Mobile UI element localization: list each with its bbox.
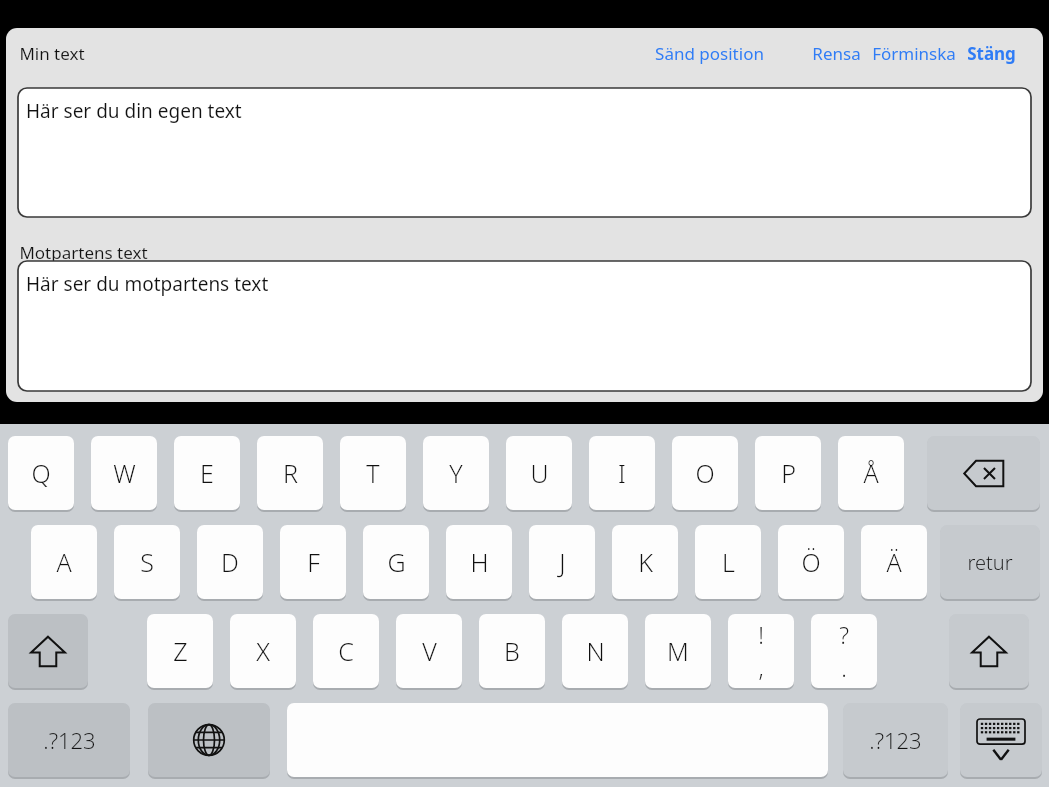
staticText: .	[841, 652, 847, 683]
button[interactable]: Backspace	[927, 436, 1040, 510]
staticText: Rensa	[812, 42, 861, 65]
button[interactable]: U	[506, 436, 572, 510]
button[interactable]: Stäng	[967, 42, 1016, 65]
staticText: G	[387, 545, 406, 579]
staticText: Ö	[801, 545, 821, 579]
button[interactable]: Shift	[949, 614, 1029, 688]
staticText: L	[722, 545, 735, 579]
staticText: A	[56, 545, 72, 579]
button[interactable]: T	[340, 436, 406, 510]
button[interactable]: R	[257, 436, 323, 510]
button[interactable]: W	[91, 436, 157, 510]
button[interactable]: S	[114, 525, 180, 599]
button[interactable]: P	[755, 436, 821, 510]
button[interactable]: D	[197, 525, 263, 599]
staticText: V	[422, 634, 437, 668]
button[interactable]: Shift	[8, 614, 88, 688]
button[interactable]: F	[280, 525, 346, 599]
staticText: Q	[31, 456, 51, 490]
button[interactable]: Här ser du motpartens text	[18, 261, 1031, 391]
staticText: Förminska	[872, 42, 956, 65]
button[interactable]: I	[589, 436, 655, 510]
button[interactable]: .?123	[843, 703, 948, 777]
button[interactable]: Y	[423, 436, 489, 510]
staticText: W	[113, 456, 136, 490]
staticText: B	[504, 634, 520, 668]
staticText: !	[758, 619, 764, 650]
staticText: Här ser du din egen text	[26, 98, 242, 124]
button[interactable]: Ä	[861, 525, 927, 599]
staticText: S	[140, 545, 154, 579]
button[interactable]: C	[313, 614, 379, 688]
staticText: M	[667, 634, 689, 668]
staticText: N	[586, 634, 605, 668]
button[interactable]: B	[479, 614, 545, 688]
staticText: U	[530, 456, 549, 490]
staticText: · 02:00 08:48	[258, 24, 326, 39]
button[interactable]: Z	[147, 614, 213, 688]
staticText: D	[221, 545, 239, 579]
button[interactable]: N	[562, 614, 628, 688]
staticText: P	[781, 456, 796, 490]
button[interactable]: Ö	[778, 525, 844, 599]
staticText: H	[470, 545, 489, 579]
staticText: K	[638, 545, 653, 579]
button[interactable]: Rensa	[812, 42, 861, 65]
staticText: Här ser du motpartens text	[26, 271, 269, 297]
staticText: .?123	[869, 725, 922, 755]
staticText: J	[559, 545, 566, 579]
button[interactable]: L	[695, 525, 761, 599]
button[interactable]: Här ser du din egen text	[18, 88, 1031, 217]
button[interactable]: Sänd position	[655, 42, 764, 65]
staticText: .?123	[43, 725, 96, 755]
staticText: Ä	[886, 545, 902, 579]
button[interactable]: Å	[838, 436, 904, 510]
staticText: R	[283, 456, 298, 490]
button[interactable]: Exclamation semicolon	[728, 614, 794, 688]
staticText: T	[366, 456, 380, 490]
staticText: O	[695, 456, 715, 490]
staticText: Y	[449, 456, 463, 490]
button[interactable]: J	[529, 525, 595, 599]
button[interactable]: retur	[940, 525, 1040, 599]
button[interactable]: Hide keyboard	[960, 703, 1042, 777]
button[interactable]: M	[645, 614, 711, 688]
button[interactable]: .?123	[8, 703, 130, 777]
staticText: X	[256, 634, 270, 668]
button[interactable]: G	[363, 525, 429, 599]
staticText: F	[307, 545, 320, 579]
staticText: Å	[863, 456, 879, 490]
button[interactable]: Q	[8, 436, 74, 510]
button[interactable]: H	[446, 525, 512, 599]
button[interactable]: V	[396, 614, 462, 688]
button[interactable]: Question period	[811, 614, 877, 688]
staticText: Sänd position	[655, 42, 764, 65]
staticText: ?	[839, 619, 849, 650]
staticText: ,	[758, 652, 764, 683]
button[interactable]: K	[612, 525, 678, 599]
button[interactable]: X	[230, 614, 296, 688]
button[interactable]: A	[31, 525, 97, 599]
staticText: Motpartens text	[19, 241, 148, 264]
button[interactable]: Next keyboard	[148, 703, 270, 777]
button[interactable]: Förminska	[872, 42, 956, 65]
button[interactable]: O	[672, 436, 738, 510]
staticText: C	[338, 634, 354, 668]
staticText: Stäng	[967, 42, 1016, 65]
staticText: Min text	[19, 42, 85, 65]
staticText: I	[618, 456, 626, 490]
staticText: E	[200, 456, 214, 490]
staticText: retur	[967, 549, 1013, 576]
staticText: Z	[173, 634, 188, 668]
button[interactable]: E	[174, 436, 240, 510]
